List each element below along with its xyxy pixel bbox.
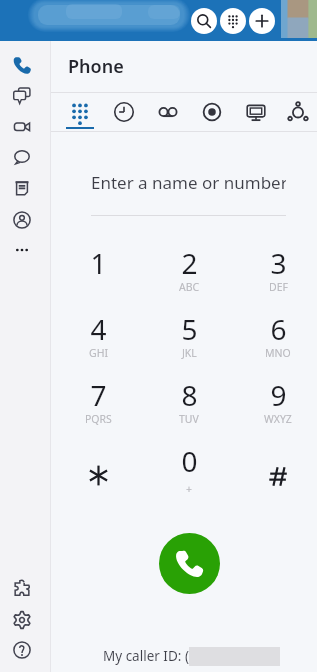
button[interactable]: vm	[146, 93, 190, 131]
button[interactable]: Calls	[4, 51, 40, 79]
button[interactable]: rec	[190, 93, 234, 131]
button[interactable]: People	[4, 206, 40, 234]
button[interactable]: Chat	[4, 143, 40, 171]
staticText: Enter a name or number	[91, 171, 286, 194]
staticText: ABC	[179, 280, 200, 294]
button[interactable]: 2	[151, 244, 227, 310]
button[interactable]: Settings	[4, 606, 40, 634]
button[interactable]: 0	[151, 442, 227, 508]
staticText: PQRS	[85, 412, 112, 426]
staticText: 2	[181, 244, 198, 282]
staticText: 4	[90, 310, 107, 348]
staticText: MNO	[265, 346, 291, 360]
staticText: Phone	[68, 54, 124, 79]
button[interactable]: Meet	[4, 113, 40, 141]
staticText: TUV	[179, 412, 199, 426]
staticText: 7	[90, 376, 107, 414]
button[interactable]	[60, 442, 136, 508]
staticText: DEF	[269, 280, 288, 294]
staticText: +	[186, 482, 193, 496]
staticText: JKL	[182, 346, 197, 360]
button[interactable]	[240, 442, 316, 508]
button[interactable]: dial	[58, 93, 102, 131]
button[interactable]: 4	[60, 310, 136, 376]
button[interactable]: Search	[30, 0, 185, 34]
button[interactable]: 1	[60, 244, 136, 310]
button[interactable]: mon	[234, 93, 278, 131]
staticText: My caller ID: (	[103, 647, 189, 665]
button[interactable]: 7	[60, 376, 136, 442]
button[interactable]: clock	[102, 93, 146, 131]
staticText: 9	[270, 376, 287, 414]
button[interactable]: Help	[4, 636, 40, 664]
button[interactable]: New call	[249, 8, 275, 34]
button[interactable]: 6	[240, 310, 316, 376]
staticText: 0	[181, 442, 198, 480]
button[interactable]: 5	[151, 310, 227, 376]
staticText: 6	[270, 310, 287, 348]
button[interactable]: More	[4, 236, 40, 264]
staticText: 5	[181, 310, 198, 348]
button[interactable]: Enter a name or number	[91, 165, 286, 199]
button[interactable]: 3	[240, 244, 316, 310]
button[interactable]: Account	[281, 0, 317, 38]
staticText: 8	[181, 376, 198, 414]
button[interactable]: Teams	[4, 82, 40, 110]
button[interactable]: Dialpad	[220, 8, 246, 34]
button[interactable]: 8	[151, 376, 227, 442]
button[interactable]: Apps	[4, 574, 40, 602]
button[interactable]: Search	[191, 8, 217, 34]
staticText: 3	[270, 244, 287, 282]
button[interactable]: Call	[159, 533, 220, 594]
staticText: WXYZ	[264, 412, 292, 426]
button[interactable]: 9	[240, 376, 316, 442]
button[interactable]: Files	[4, 174, 40, 202]
staticText: GHI	[89, 346, 108, 360]
staticText: 1	[90, 244, 107, 282]
button[interactable]: org	[278, 93, 317, 131]
button[interactable]: My caller ID: (	[103, 646, 280, 665]
